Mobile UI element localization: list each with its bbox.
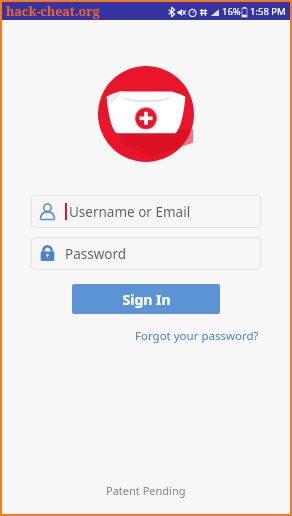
staticText: Username or Email xyxy=(69,203,191,221)
staticText: Forgot your password? xyxy=(135,328,259,344)
button[interactable]: Username or Email xyxy=(31,195,261,228)
button[interactable]: Password xyxy=(31,237,261,270)
staticText: Patent Pending xyxy=(106,483,186,498)
staticText: 16% xyxy=(222,5,241,18)
staticText: Password xyxy=(65,245,127,263)
button[interactable]: Forgot your password? xyxy=(133,325,261,347)
staticText: 1:58 PM xyxy=(250,5,286,18)
staticText: hack-cheat.org xyxy=(6,3,100,20)
staticText: Sign In xyxy=(122,290,171,309)
button[interactable]: Sign In xyxy=(72,284,220,314)
